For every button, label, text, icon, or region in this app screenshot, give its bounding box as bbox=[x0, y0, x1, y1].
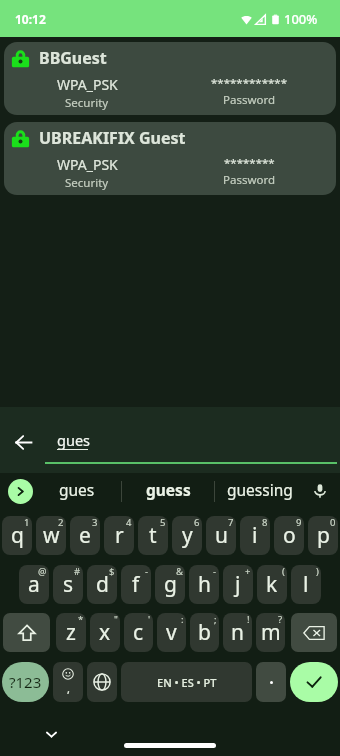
staticText: f bbox=[132, 570, 140, 599]
button[interactable]: Switch language bbox=[87, 662, 117, 702]
staticText: 8 bbox=[262, 516, 268, 529]
staticText: b bbox=[198, 618, 211, 647]
staticText: WPA_PSK bbox=[57, 75, 118, 94]
staticText: EN • ES • PT bbox=[157, 675, 217, 690]
staticText: v bbox=[166, 618, 177, 647]
staticText: m bbox=[261, 618, 281, 647]
button[interactable]: Back bbox=[5, 424, 41, 460]
staticText: s bbox=[63, 570, 74, 599]
button[interactable]: v bbox=[157, 613, 186, 652]
staticText: UBREAKIFIX Guest bbox=[39, 127, 186, 149]
staticText: l bbox=[303, 570, 309, 599]
button[interactable]: q bbox=[2, 516, 32, 555]
staticText: : bbox=[181, 613, 184, 626]
button[interactable]: UBREAKIFIX Guest bbox=[4, 122, 336, 195]
staticText: Security bbox=[65, 175, 109, 191]
staticText: r bbox=[115, 521, 124, 550]
staticText: $ bbox=[109, 565, 115, 578]
staticText: 100% bbox=[284, 10, 318, 28]
button[interactable]: h bbox=[189, 565, 219, 604]
button[interactable]: z bbox=[56, 613, 86, 652]
staticText: @ bbox=[38, 565, 47, 578]
button[interactable]: u bbox=[206, 516, 236, 555]
button[interactable]: i bbox=[240, 516, 270, 555]
staticText: j bbox=[235, 570, 241, 599]
staticText: ( bbox=[282, 565, 285, 578]
staticText: h bbox=[198, 570, 211, 599]
button[interactable]: d bbox=[87, 565, 117, 604]
staticText: * bbox=[78, 613, 84, 626]
button[interactable]: BBGuest bbox=[4, 42, 336, 115]
button[interactable]: m bbox=[256, 613, 285, 652]
staticText: p bbox=[317, 521, 330, 550]
staticText: q bbox=[11, 521, 24, 550]
staticText: 1 bbox=[24, 516, 30, 529]
staticText: gues bbox=[57, 430, 91, 450]
button[interactable]: c bbox=[124, 613, 153, 652]
button[interactable]: g bbox=[155, 565, 185, 604]
staticText: 4 bbox=[126, 516, 132, 529]
staticText: guess bbox=[146, 479, 191, 500]
button[interactable]: n bbox=[223, 613, 252, 652]
staticText: t bbox=[149, 521, 157, 550]
staticText: ) bbox=[316, 565, 319, 578]
staticText: 0 bbox=[330, 516, 336, 529]
staticText: ?123 bbox=[9, 672, 42, 692]
button[interactable]: Voice input bbox=[307, 478, 333, 504]
staticText: o bbox=[283, 521, 296, 550]
button[interactable]: guess bbox=[122, 473, 214, 509]
button[interactable] bbox=[256, 662, 286, 702]
button[interactable]: More suggestions bbox=[8, 479, 33, 504]
button[interactable]: o bbox=[274, 516, 304, 555]
button[interactable]: b bbox=[190, 613, 219, 652]
staticText: Password bbox=[223, 92, 276, 108]
button[interactable]: e bbox=[70, 516, 100, 555]
button[interactable]: a bbox=[19, 565, 49, 604]
staticText: WPA_PSK bbox=[57, 155, 118, 174]
staticText: 10:12 bbox=[15, 11, 46, 27]
button[interactable]: Backspace bbox=[291, 613, 337, 652]
staticText: 7 bbox=[228, 516, 234, 529]
button[interactable]: gues bbox=[33, 473, 121, 509]
staticText: ? bbox=[278, 613, 283, 626]
button[interactable]: x bbox=[90, 613, 120, 652]
staticText: d bbox=[96, 570, 109, 599]
staticText: ************ bbox=[211, 75, 288, 91]
button[interactable]: r bbox=[104, 516, 134, 555]
staticText: 2 bbox=[58, 516, 64, 529]
staticText: # bbox=[74, 565, 81, 578]
button[interactable]: p bbox=[308, 516, 338, 555]
staticText: 6 bbox=[194, 516, 200, 529]
staticText: , bbox=[67, 681, 70, 696]
staticText: k bbox=[266, 570, 278, 599]
button[interactable]: j bbox=[223, 565, 253, 604]
button[interactable]: Emoji bbox=[53, 662, 83, 702]
staticText: - bbox=[213, 565, 217, 578]
button[interactable]: w bbox=[36, 516, 66, 555]
button[interactable]: y bbox=[172, 516, 202, 555]
staticText: n bbox=[231, 618, 244, 647]
button[interactable]: Enter bbox=[290, 662, 338, 702]
button[interactable]: k bbox=[257, 565, 287, 604]
staticText: guessing bbox=[227, 479, 293, 500]
button[interactable]: guessing bbox=[215, 473, 305, 509]
staticText: Security bbox=[65, 95, 109, 111]
staticText: 5 bbox=[160, 516, 166, 529]
staticText: ! bbox=[247, 613, 250, 626]
staticText: 3 bbox=[92, 516, 98, 529]
button[interactable]: Hide keyboard bbox=[38, 721, 64, 747]
button[interactable]: ?123 bbox=[2, 662, 49, 702]
staticText: Password bbox=[223, 172, 276, 188]
staticText: ******** bbox=[224, 155, 275, 171]
staticText: 9 bbox=[296, 516, 302, 529]
button[interactable]: Shift bbox=[3, 613, 50, 652]
button[interactable]: f bbox=[121, 565, 151, 604]
staticText: y bbox=[182, 521, 193, 550]
button[interactable]: l bbox=[291, 565, 321, 604]
staticText: e bbox=[79, 521, 91, 550]
button[interactable]: s bbox=[53, 565, 83, 604]
staticText: ; bbox=[214, 613, 217, 626]
button[interactable]: t bbox=[138, 516, 168, 555]
staticText: ' bbox=[148, 613, 151, 626]
button[interactable]: EN • ES • PT bbox=[121, 662, 252, 702]
